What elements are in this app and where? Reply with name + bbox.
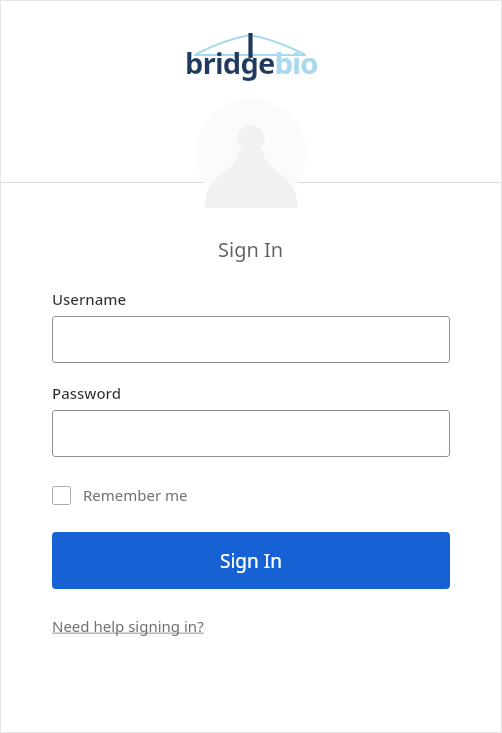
staticText: Password [52, 383, 121, 403]
staticText: Username [52, 289, 127, 309]
button[interactable]: Need help signing in? [52, 616, 204, 636]
staticText: Need help signing in? [52, 616, 204, 636]
staticText: Sign In [220, 548, 282, 574]
staticText: bridgebio [185, 43, 318, 82]
button[interactable]: Remember me [52, 485, 188, 505]
button[interactable]: Text field [52, 316, 450, 363]
button[interactable]: Text field [52, 410, 450, 457]
button[interactable]: Sign In [52, 532, 450, 589]
staticText: Sign In [218, 236, 284, 263]
staticText: Remember me [83, 485, 188, 505]
